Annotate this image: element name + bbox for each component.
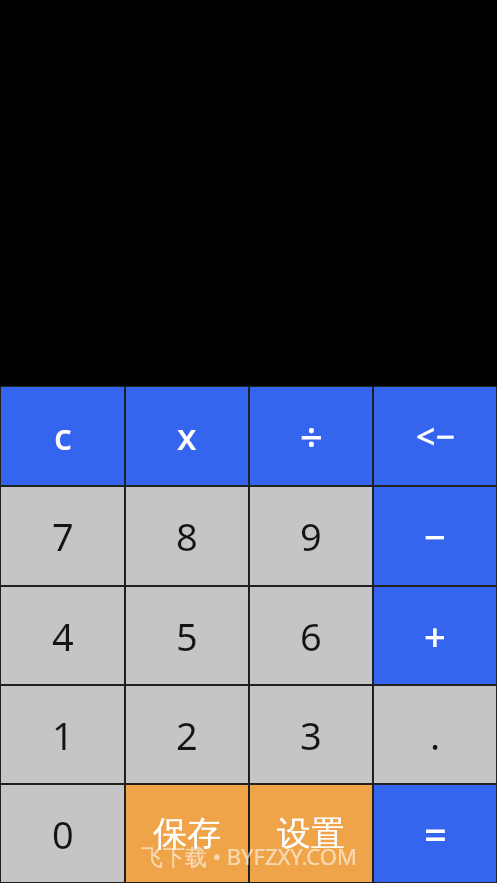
button[interactable]: 7 [0,486,125,586]
button[interactable]: 0 [0,784,125,883]
button[interactable]: − [373,486,497,586]
staticText: 保存 [153,812,221,855]
button[interactable]: c [0,386,125,486]
button[interactable]: = [373,784,497,883]
staticText: + [424,610,446,662]
button[interactable]: + [373,586,497,685]
button[interactable]: 4 [0,586,125,685]
staticText: − [424,510,446,562]
button[interactable]: 8 [125,486,249,586]
staticText: 3 [300,709,322,761]
staticText: <− [416,413,455,459]
staticText: x [177,412,197,461]
button[interactable]: 2 [125,685,249,784]
staticText: 1 [52,709,74,761]
staticText: 6 [300,610,322,662]
staticText: = [424,807,447,861]
staticText: 9 [300,510,322,562]
button[interactable]: x [125,386,249,486]
staticText: 7 [52,510,74,562]
button[interactable]: 5 [125,586,249,685]
staticText: c [54,412,72,461]
button[interactable]: <− [373,386,497,486]
staticText: 2 [176,709,198,761]
staticText: 8 [176,510,198,562]
staticText: . [430,709,441,761]
staticText: 飞下载 • BYFZXY.COM [141,841,357,871]
staticText: 5 [176,610,198,662]
staticText: 设置 [277,812,345,855]
staticText: 0 [52,808,74,860]
button[interactable]: 设置 [249,784,373,883]
button[interactable]: 保存 [125,784,249,883]
button[interactable]: 3 [249,685,373,784]
button[interactable]: 6 [249,586,373,685]
staticText: ÷ [300,409,323,463]
button[interactable]: 9 [249,486,373,586]
button[interactable]: ÷ [249,386,373,486]
button[interactable]: . [373,685,497,784]
button[interactable]: 1 [0,685,125,784]
staticText: 4 [52,610,74,662]
